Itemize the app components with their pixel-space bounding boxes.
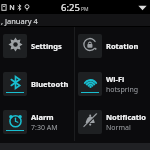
staticText: Bluetooth [31, 79, 69, 89]
staticText: hotspring [106, 85, 139, 95]
button[interactable]: Bluetooth [0, 65, 74, 103]
button[interactable]: Alarm [0, 103, 74, 141]
button[interactable]: Wi-Fi [75, 65, 150, 103]
other: Alarm [3, 110, 27, 134]
button[interactable]: Settings [0, 27, 74, 65]
staticText: Rotation Lock [106, 41, 149, 51]
other: Wi-Fi [78, 72, 102, 96]
staticText: Alarm [31, 112, 54, 122]
other: Notifications [78, 110, 102, 134]
other: Rotation Lock [78, 34, 102, 58]
button[interactable]: Rotation Lock [75, 27, 150, 65]
other: Settings [3, 34, 27, 58]
other: Bluetooth [3, 72, 27, 96]
staticText: Normal [106, 123, 131, 133]
staticText: Settings [31, 41, 62, 51]
staticText: Notifications [106, 112, 149, 122]
staticText: Wi-Fi [106, 74, 125, 84]
staticText: , January 4 [1, 16, 38, 26]
staticText: PM [81, 6, 89, 13]
staticText: 6:25 [61, 1, 80, 14]
staticText: 7:30 AM [31, 123, 58, 133]
button[interactable]: Notifications [75, 103, 150, 141]
